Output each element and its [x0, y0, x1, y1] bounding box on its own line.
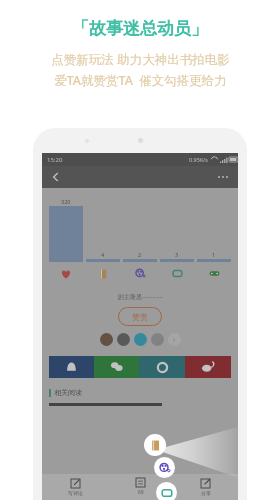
staticText: 69 — [138, 489, 144, 496]
button[interactable]: Category 2 — [86, 264, 120, 283]
staticText: 2 — [138, 251, 142, 258]
button[interactable]: Category 3 — [123, 264, 157, 283]
button[interactable]: Category 1 — [49, 264, 83, 283]
button[interactable]: Back — [48, 169, 64, 185]
staticText: 3 — [175, 251, 179, 258]
button[interactable]: Category 4 — [160, 264, 194, 283]
button[interactable]: Share to Weibo — [185, 356, 231, 378]
button[interactable]: 赞赏 — [118, 307, 162, 326]
staticText: 爱TA就赞赏TA 催文勾搭更给力 — [54, 72, 227, 89]
staticText: 相关阅读 — [54, 388, 82, 397]
button[interactable]: Share to WeChat — [94, 356, 139, 378]
staticText: › — [173, 335, 176, 345]
button[interactable]: Supporter — [117, 333, 130, 346]
staticText: 点赞新玩法 助力大神出书拍电影 — [51, 51, 230, 68]
staticText: 1 — [212, 251, 216, 258]
button[interactable]: 写评论 — [42, 474, 108, 500]
staticText: 赞赏 — [132, 312, 148, 322]
button[interactable]: Book — [144, 434, 166, 456]
staticText: 320 — [61, 198, 71, 205]
button[interactable]: Film — [154, 457, 175, 478]
staticText: 「故事迷总动员」 — [72, 18, 208, 39]
button[interactable]: Supporter — [100, 333, 113, 346]
button[interactable]: Supporter — [134, 333, 147, 346]
button[interactable]: Share to Moments — [139, 356, 185, 378]
button[interactable]: More options — [214, 169, 232, 185]
staticText: 4 — [101, 251, 105, 258]
staticText: 剧主隆恩~~~~~~ — [118, 293, 163, 301]
button[interactable]: TV — [156, 482, 177, 500]
button[interactable]: 分享 — [173, 474, 238, 500]
staticText: 15:20 — [47, 156, 63, 164]
button[interactable]: More supporters — [168, 333, 181, 346]
button[interactable]: 69 — [108, 474, 173, 500]
button[interactable]: Category 5 — [197, 264, 231, 283]
staticText: 0.95K/s — [189, 156, 208, 163]
button[interactable]: Share to QQ — [49, 356, 94, 378]
button[interactable]: Supporter — [151, 333, 164, 346]
staticText: 分享 — [201, 490, 211, 496]
staticText: 写评论 — [68, 490, 83, 496]
